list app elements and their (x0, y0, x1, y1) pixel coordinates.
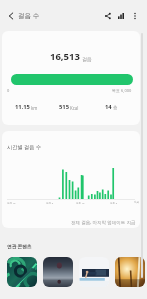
staticText: 515 (59, 103, 69, 111)
button[interactable] (115, 257, 145, 287)
staticText: 14 (105, 103, 112, 111)
staticText: 0 (7, 88, 10, 93)
button[interactable]: Back (3, 8, 18, 23)
staticText: Kcal (70, 105, 79, 111)
staticText: 오후 6 (110, 201, 118, 204)
button[interactable]: Statistics (114, 9, 128, 23)
button[interactable] (7, 257, 37, 287)
staticText: 오후 12 (76, 201, 85, 204)
staticText: 16,513 (50, 50, 80, 63)
staticText: 지금 (134, 201, 139, 204)
staticText: 전체 걸음, 마지막 업데이트 지금 (71, 219, 136, 225)
staticText: km (31, 105, 38, 111)
staticText: 걸음 수 (18, 11, 40, 20)
staticText: 층 (113, 105, 118, 111)
button[interactable]: More options (128, 9, 142, 23)
staticText: 연관 콘텐츠 (7, 243, 32, 249)
staticText: 목표 6,000 (112, 88, 132, 93)
button[interactable] (79, 257, 109, 287)
staticText: 11.15 (15, 103, 30, 111)
staticText: 시간별 걸음 수 (7, 143, 41, 150)
staticText: 걸음 (82, 56, 92, 62)
button[interactable] (43, 257, 73, 287)
button[interactable]: Share (101, 9, 115, 23)
staticText: 오전 6 (46, 201, 54, 204)
staticText: 오전 12 (7, 201, 16, 204)
